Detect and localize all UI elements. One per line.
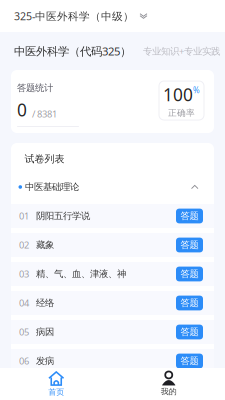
staticText: 06	[19, 355, 29, 367]
button[interactable]: 中医基础理论	[11, 175, 214, 199]
staticText: 试卷列表	[24, 153, 64, 165]
staticText: 正确率	[168, 107, 195, 118]
staticText: 325-中医外科学（中级）	[14, 9, 134, 23]
staticText: 发病	[36, 355, 54, 367]
button[interactable]: 04	[11, 291, 214, 315]
staticText: 答题	[180, 268, 198, 280]
button[interactable]: 325-中医外科学（中级）	[0, 0, 225, 32]
staticText: 100	[163, 83, 193, 106]
staticText: 藏象	[36, 239, 54, 251]
staticText: 经络	[36, 297, 54, 309]
staticText: 答题	[180, 297, 198, 309]
staticText: 05	[19, 326, 29, 338]
staticText: 体质	[36, 384, 54, 396]
button[interactable]: 我的	[112, 368, 225, 400]
staticText: 中医外科学（代码325）	[14, 43, 131, 59]
staticText: 专业知识+专业实践	[143, 45, 220, 57]
staticText: 答题统计	[17, 82, 53, 94]
staticText: 02	[19, 239, 29, 251]
staticText: 阴阳五行学说	[36, 210, 90, 222]
staticText: 首页	[48, 387, 64, 397]
button[interactable]: 05	[11, 320, 214, 344]
staticText: 我的	[161, 386, 177, 397]
staticText: 病因	[36, 326, 54, 338]
button[interactable]: 03	[11, 262, 214, 286]
staticText: 03	[19, 268, 29, 280]
staticText: 04	[19, 297, 29, 309]
staticText: 精、气、血、津液、神	[36, 268, 126, 280]
staticText: 0	[17, 98, 27, 122]
staticText: 01	[19, 210, 29, 222]
staticText: 中医基础理论	[25, 181, 79, 193]
staticText: 答题	[180, 239, 198, 251]
button[interactable]: 06	[11, 349, 214, 373]
staticText: 答题	[180, 326, 198, 338]
button[interactable]: 02	[11, 233, 214, 257]
staticText: 答题	[180, 355, 198, 367]
button[interactable]: 01	[11, 204, 214, 228]
staticText: 答题	[180, 210, 198, 222]
button[interactable]: 首页	[0, 368, 112, 400]
staticText: %	[193, 85, 200, 96]
button[interactable]: 07	[11, 378, 214, 400]
staticText: / 8381	[32, 107, 57, 120]
